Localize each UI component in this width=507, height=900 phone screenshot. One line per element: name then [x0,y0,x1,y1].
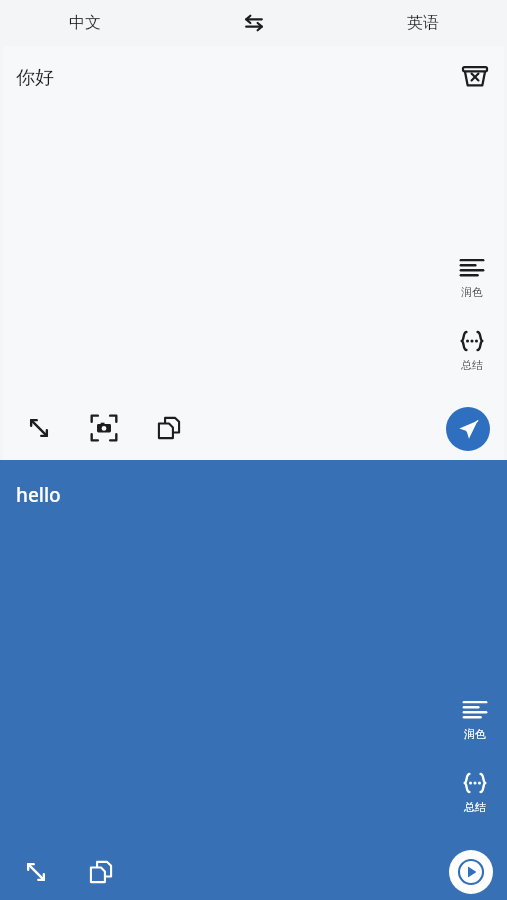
staticText: 中文 [69,13,101,33]
button[interactable]: Expand [18,854,54,890]
button[interactable]: Clear text [456,58,494,96]
button[interactable]: Translate [446,407,490,451]
staticText: 润色 [461,285,483,299]
staticText: 总结 [464,800,486,814]
staticText: 总结 [461,358,483,372]
button[interactable]: Expand [21,410,57,446]
button[interactable]: Scan with camera [86,410,122,446]
button[interactable]: 总结 [453,767,497,816]
staticText: 你好 [16,66,54,90]
button[interactable]: Copy translation [83,854,119,890]
button[interactable]: Swap languages [169,0,338,46]
button[interactable]: 总结 [450,325,494,374]
button[interactable]: 润色 [453,694,497,743]
button[interactable]: 英语 [338,0,507,46]
staticText: 润色 [464,727,486,741]
button[interactable]: Copy text [151,410,187,446]
staticText: hello [16,482,61,508]
button[interactable]: Play translation [449,850,493,894]
button[interactable]: 润色 [450,252,494,301]
staticText: 英语 [407,13,439,33]
button[interactable]: 中文 [0,0,169,46]
